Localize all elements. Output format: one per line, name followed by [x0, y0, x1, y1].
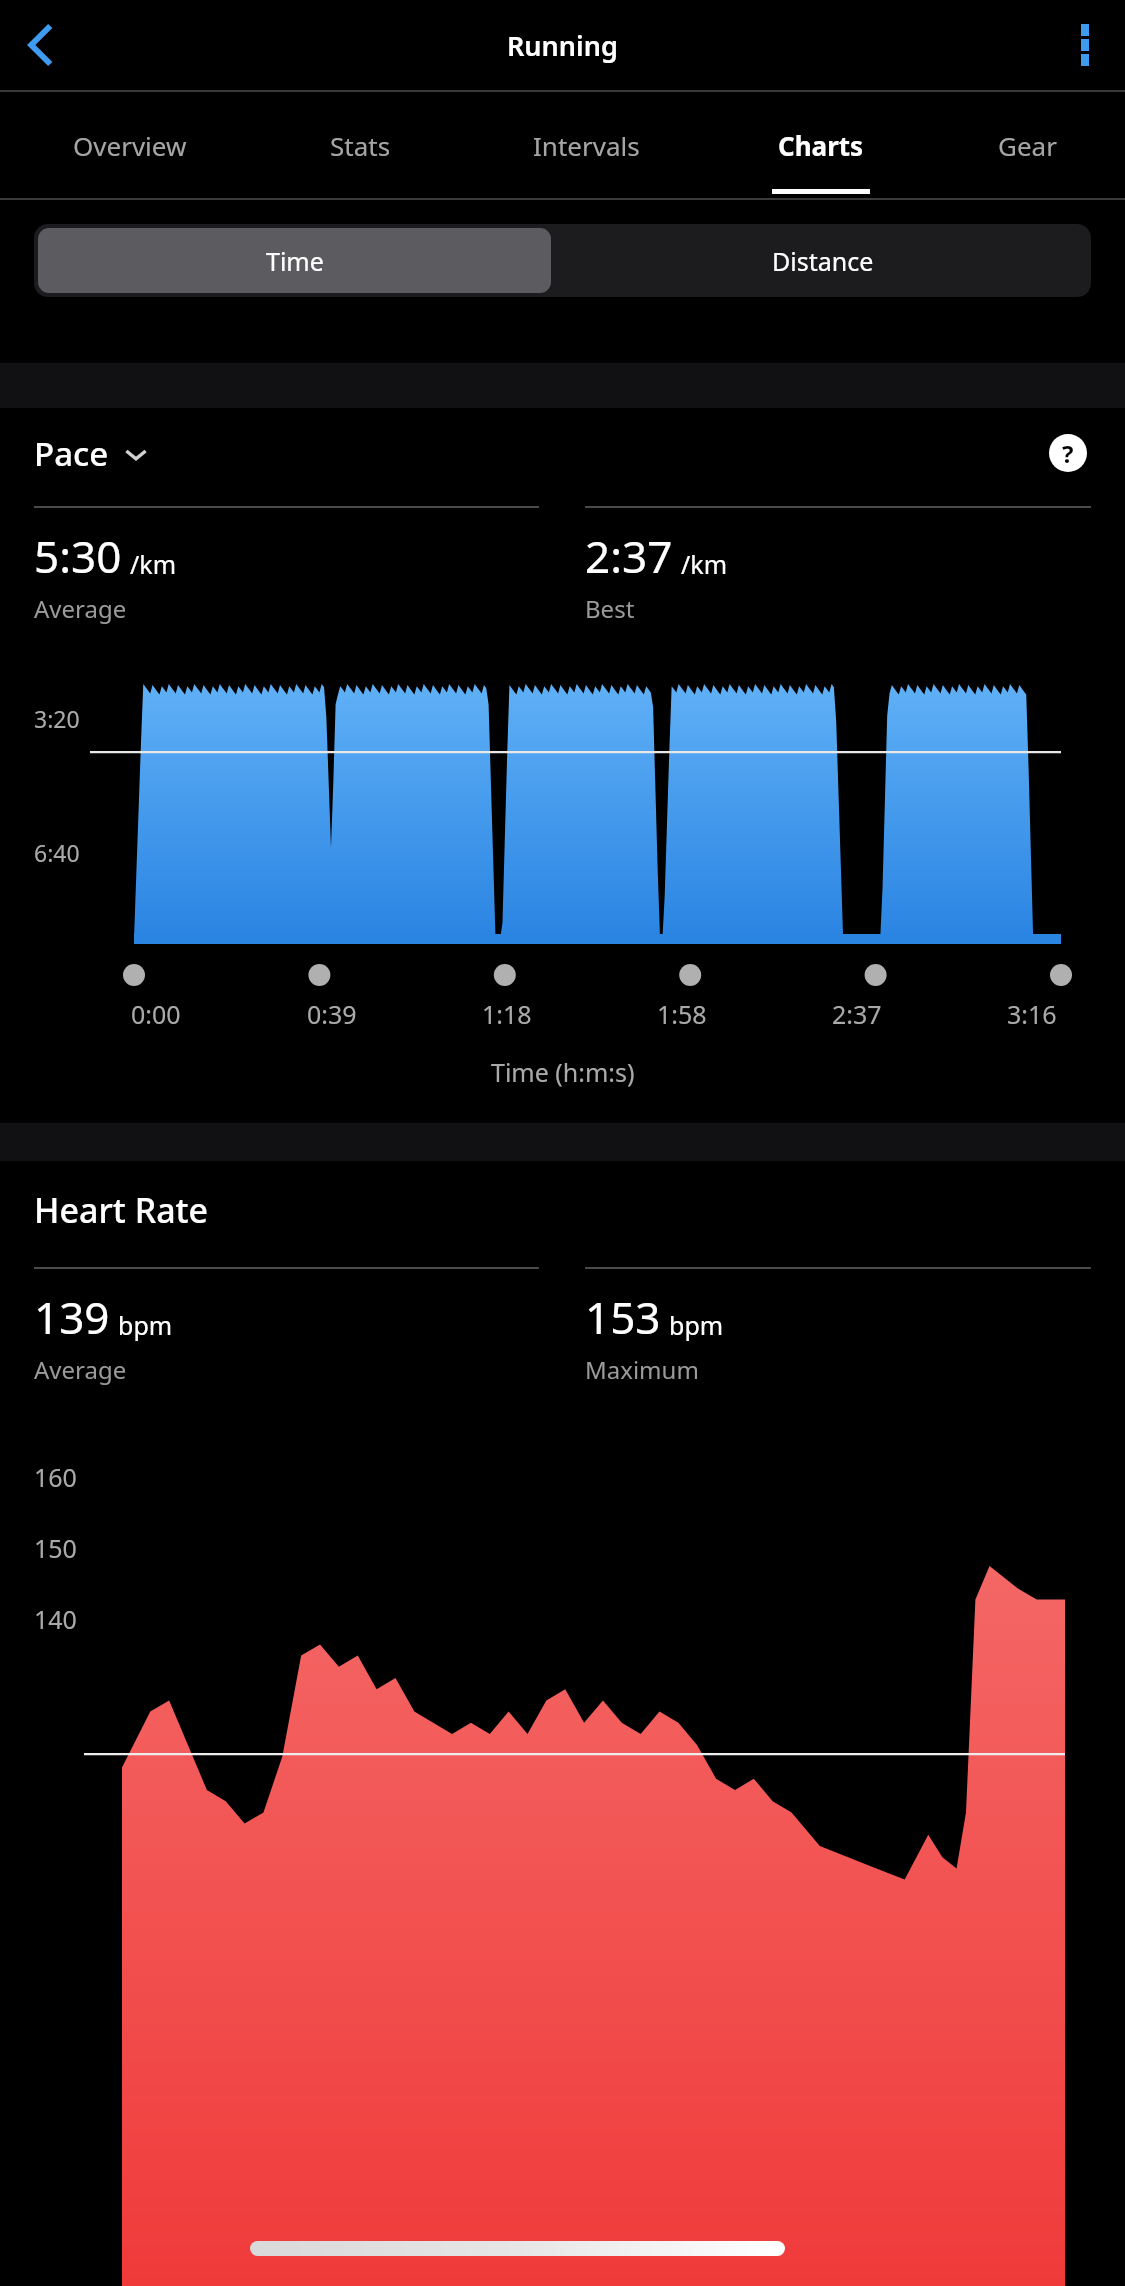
staticText: Pace — [34, 431, 109, 476]
staticText: Average — [34, 1353, 127, 1386]
staticText: 6:40 — [34, 837, 80, 868]
button[interactable]: Back — [8, 14, 70, 76]
staticText: 140 — [34, 1602, 77, 1636]
staticText: 0:00 — [131, 997, 181, 1031]
staticText: /km — [130, 547, 177, 581]
button[interactable]: Time — [38, 228, 551, 293]
button[interactable]: Charts — [712, 92, 929, 198]
staticText: Overview — [73, 128, 187, 163]
staticText: Best — [585, 592, 635, 625]
staticText: Running — [507, 27, 618, 64]
staticText: bpm — [669, 1308, 724, 1342]
staticText: 3:20 — [34, 703, 80, 734]
staticText: 5:30 — [34, 526, 122, 586]
staticText: Charts — [778, 128, 864, 163]
staticText: Gear — [998, 128, 1057, 163]
staticText: 153 — [585, 1287, 661, 1347]
button[interactable]: Distance — [555, 224, 1091, 297]
staticText: Average — [34, 592, 127, 625]
staticText: 3:16 — [1007, 997, 1057, 1031]
staticText: Time — [266, 244, 324, 278]
staticText: 1:18 — [482, 997, 532, 1031]
staticText: /km — [681, 547, 728, 581]
staticText: 2:37 — [832, 997, 882, 1031]
staticText: Stats — [330, 128, 391, 163]
staticText: 2:37 — [585, 526, 673, 586]
staticText: 139 — [34, 1287, 110, 1347]
staticText: 1:58 — [657, 997, 707, 1031]
staticText: Intervals — [533, 128, 640, 163]
button[interactable]: Intervals — [461, 92, 712, 198]
button[interactable]: Overview — [0, 92, 259, 198]
button[interactable]: Help — [1045, 430, 1091, 476]
staticText: Heart Rate — [34, 1187, 209, 1233]
button[interactable]: More options — [1055, 15, 1115, 75]
staticText: 160 — [34, 1460, 77, 1494]
staticText: bpm — [118, 1308, 173, 1342]
staticText: ? — [1062, 437, 1074, 470]
button[interactable]: Stats — [259, 92, 461, 198]
staticText: 150 — [34, 1531, 77, 1565]
staticText: Maximum — [585, 1353, 699, 1386]
staticText: 0:39 — [307, 997, 357, 1031]
button[interactable]: Pace — [34, 431, 151, 476]
staticText: Distance — [772, 244, 874, 278]
button[interactable]: Gear — [929, 92, 1125, 198]
staticText: Time (h:m:s) — [491, 1055, 635, 1089]
